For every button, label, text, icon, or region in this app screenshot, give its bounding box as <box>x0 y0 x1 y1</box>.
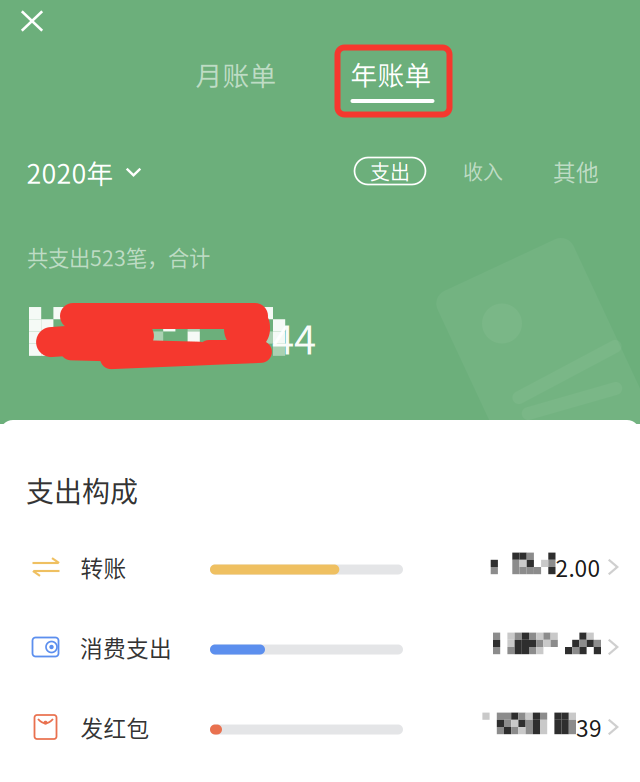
staticText: 转账 <box>80 551 126 583</box>
button[interactable]: 收入 <box>453 151 513 191</box>
button[interactable]: 消费支出 <box>0 608 640 688</box>
staticText: 39 <box>576 711 602 743</box>
button[interactable]: 年账单 <box>336 51 448 131</box>
staticText: 消费支出 <box>80 631 172 663</box>
button[interactable]: 2020年 <box>14 149 154 195</box>
staticText: 共支出523笔，合计 <box>27 242 210 272</box>
button[interactable]: Close <box>3 0 61 47</box>
staticText: 支出构成 <box>26 470 138 510</box>
staticText: 44 <box>272 308 316 366</box>
button[interactable]: 发红包 <box>0 688 640 768</box>
staticText: 年账单 <box>350 54 431 93</box>
button[interactable]: 支出 <box>354 157 425 184</box>
button[interactable]: 转账 <box>0 528 640 608</box>
staticText: 发红包 <box>80 711 149 743</box>
staticText: 支出 <box>370 156 410 185</box>
button[interactable]: 月账单 <box>180 42 292 106</box>
staticText: 2020年 <box>26 153 113 191</box>
button[interactable]: 其他 <box>546 151 606 191</box>
staticText: 收入 <box>463 156 503 185</box>
staticText: 其他 <box>553 155 599 187</box>
staticText: 月账单 <box>195 55 276 93</box>
staticText: 2.00 <box>555 551 600 583</box>
